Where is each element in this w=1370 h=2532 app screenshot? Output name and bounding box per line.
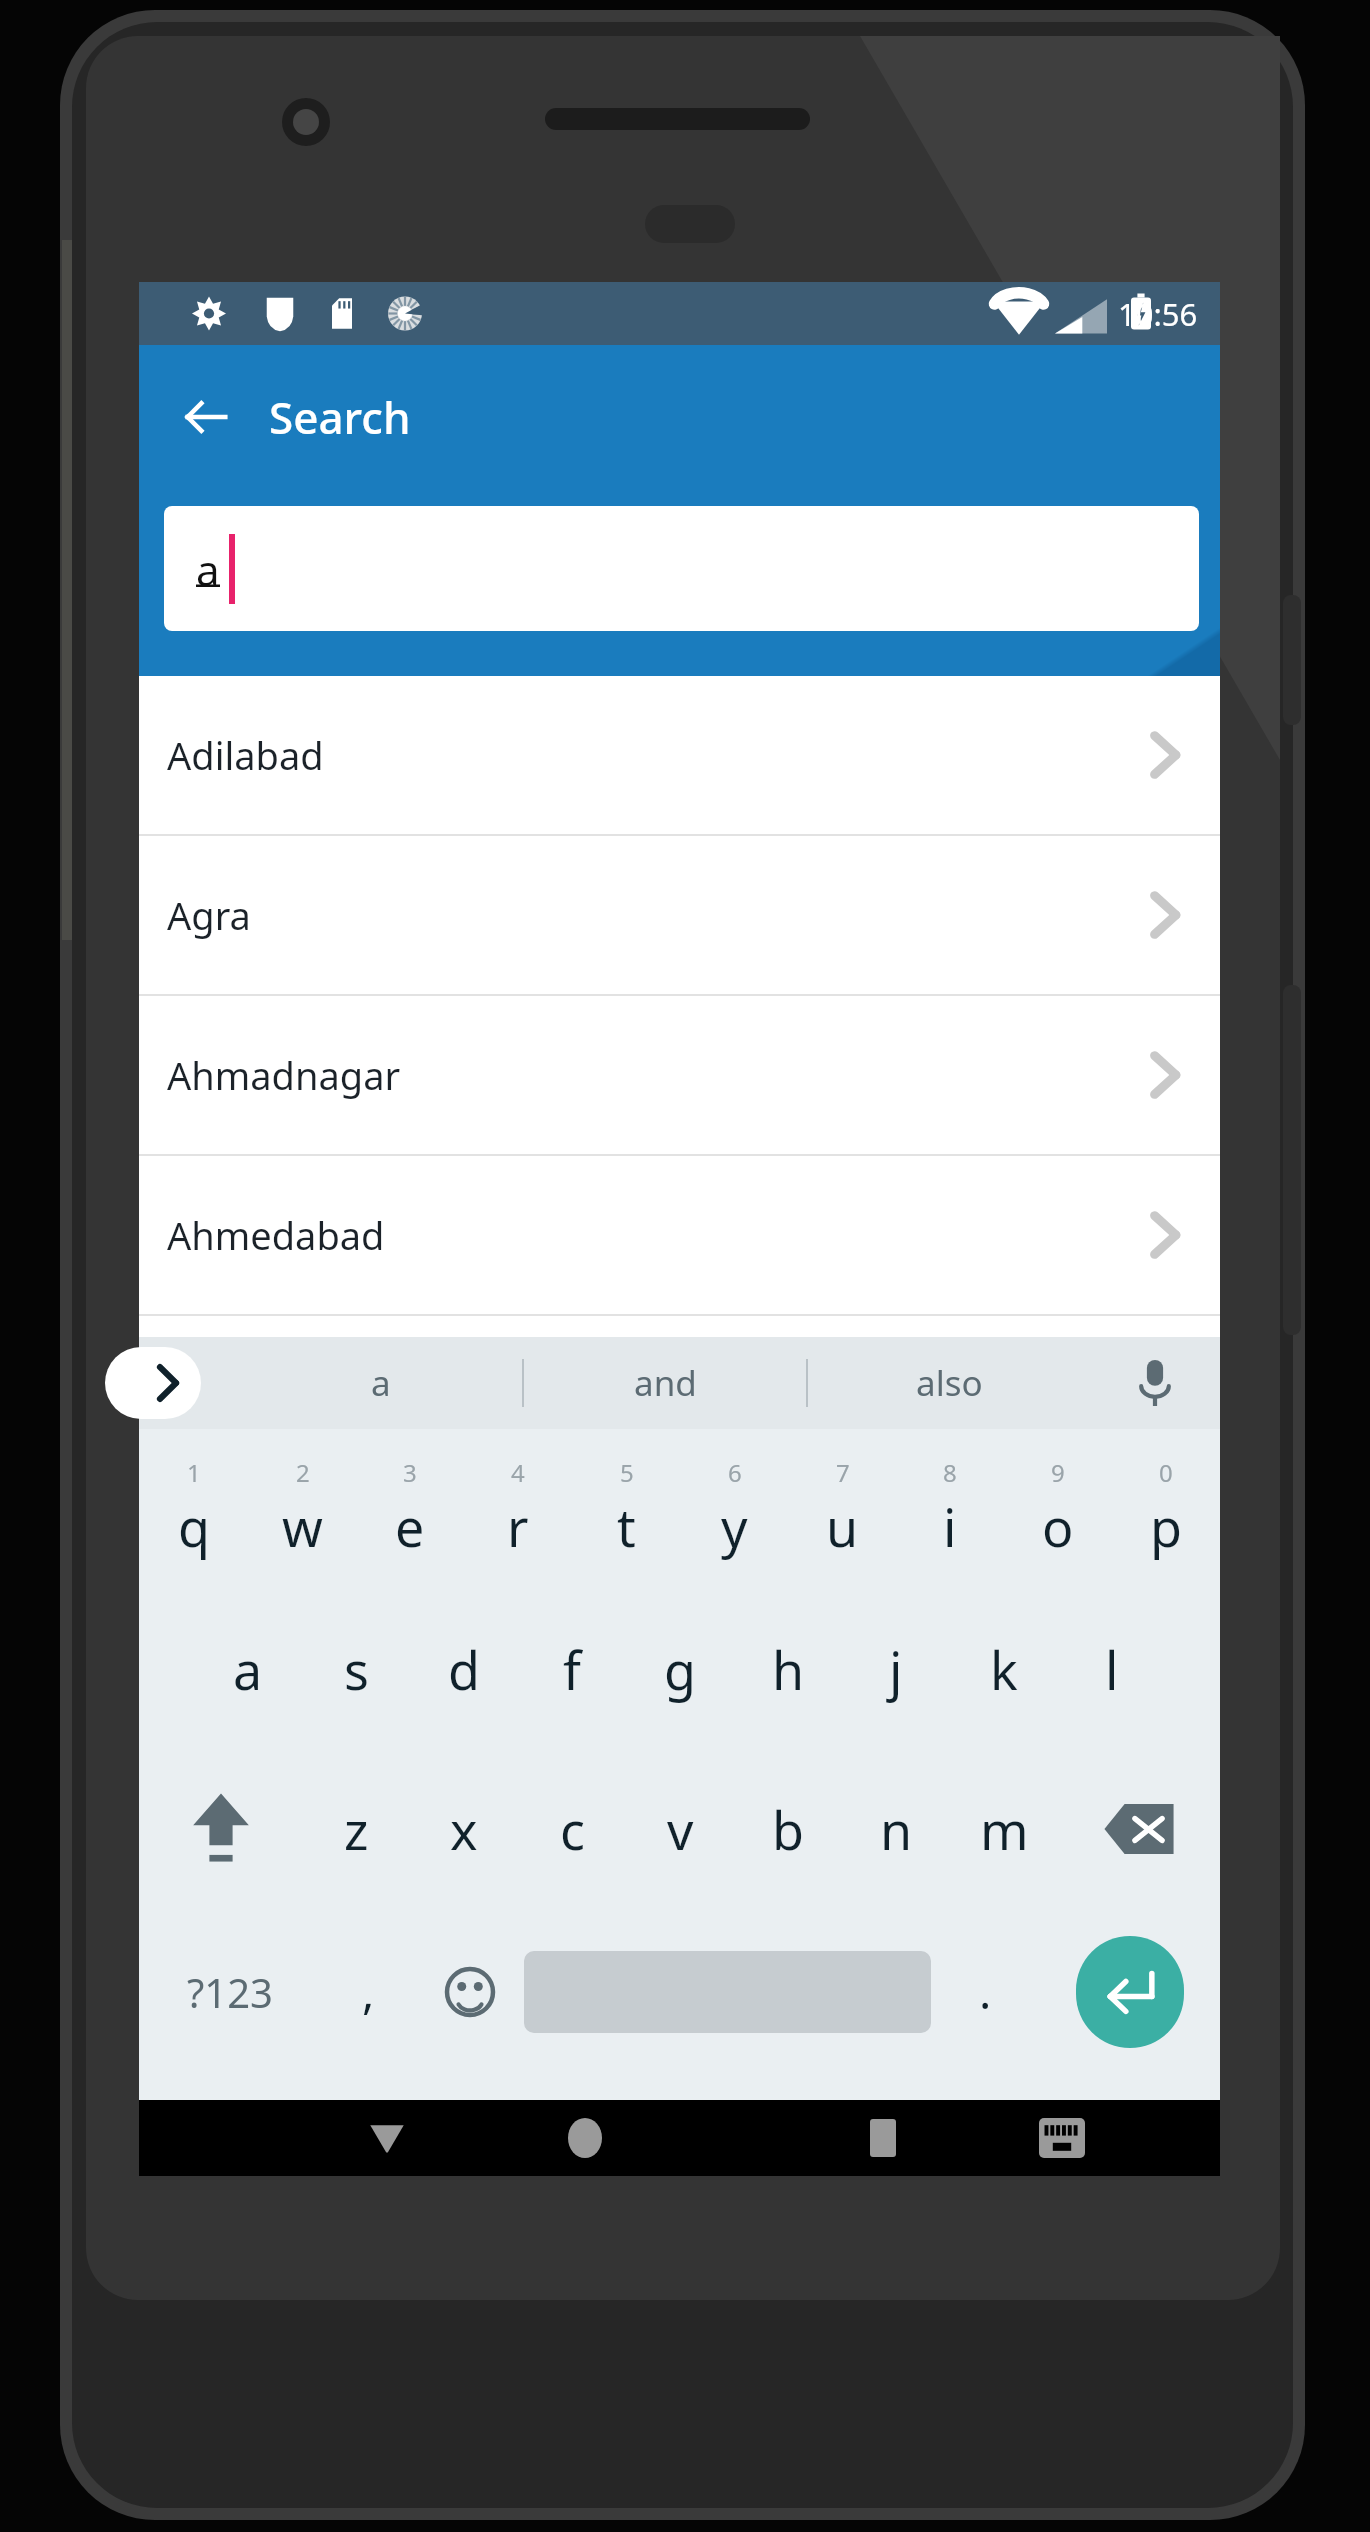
- staticText: a: [233, 1634, 263, 1705]
- staticText: t: [617, 1491, 636, 1562]
- button[interactable]: 9: [1004, 1429, 1112, 1589]
- button[interactable]: Ahmedabad: [139, 1156, 1220, 1314]
- button[interactable]: Enter: [1076, 1936, 1184, 2048]
- staticText: ?123: [187, 1965, 273, 2019]
- staticText: a: [196, 541, 220, 598]
- button[interactable]: Switch keyboard: [972, 2100, 1151, 2176]
- button[interactable]: ?123: [139, 1909, 320, 2074]
- button[interactable]: 1: [139, 1429, 248, 1589]
- button[interactable]: Hide keyboard: [288, 2100, 486, 2176]
- button[interactable]: 8: [896, 1429, 1004, 1589]
- staticText: 5: [620, 1456, 634, 1489]
- staticText: 7: [836, 1456, 850, 1489]
- staticText: v: [667, 1794, 694, 1865]
- button[interactable]: .: [931, 1909, 1039, 2074]
- staticText: k: [990, 1634, 1018, 1705]
- button[interactable]: b: [734, 1749, 842, 1909]
- staticText: q: [178, 1491, 210, 1562]
- staticText: f: [563, 1634, 581, 1705]
- staticText: g: [664, 1634, 696, 1705]
- button[interactable]: Adilabad: [139, 676, 1220, 834]
- button[interactable]: Backspace: [1058, 1749, 1220, 1909]
- staticText: 2: [296, 1456, 310, 1489]
- button[interactable]: Back: [167, 378, 245, 456]
- button[interactable]: More suggestions: [105, 1347, 201, 1419]
- staticText: Search: [269, 387, 411, 447]
- button[interactable]: l: [1058, 1589, 1166, 1749]
- button[interactable]: ,: [320, 1909, 416, 2074]
- button[interactable]: f: [518, 1589, 626, 1749]
- staticText: c: [560, 1794, 585, 1865]
- staticText: 6: [728, 1456, 742, 1489]
- button[interactable]: a: [194, 1589, 302, 1749]
- button[interactable]: a: [239, 1337, 522, 1429]
- staticText: .: [979, 1960, 992, 2023]
- staticText: b: [772, 1794, 804, 1865]
- staticText: i: [943, 1491, 957, 1562]
- button[interactable]: 2: [248, 1429, 356, 1589]
- button[interactable]: z: [302, 1749, 410, 1909]
- button[interactable]: Agra: [139, 836, 1220, 994]
- button[interactable]: v: [626, 1749, 734, 1909]
- staticText: r: [507, 1491, 529, 1562]
- button[interactable]: 5: [572, 1429, 680, 1589]
- button[interactable]: n: [842, 1749, 950, 1909]
- button[interactable]: k: [950, 1589, 1058, 1749]
- staticText: 10:56: [1118, 293, 1198, 335]
- staticText: d: [448, 1634, 480, 1705]
- staticText: 8: [943, 1456, 957, 1489]
- staticText: y: [721, 1491, 748, 1562]
- button[interactable]: and: [524, 1337, 806, 1429]
- staticText: h: [772, 1634, 805, 1705]
- staticText: s: [344, 1634, 369, 1705]
- staticText: j: [889, 1634, 903, 1705]
- staticText: e: [395, 1491, 425, 1562]
- staticText: ,: [362, 1960, 375, 2023]
- button[interactable]: c: [518, 1749, 626, 1909]
- button[interactable]: j: [842, 1589, 950, 1749]
- button[interactable]: Voice input: [1090, 1337, 1220, 1429]
- button[interactable]: x: [410, 1749, 518, 1909]
- button[interactable]: d: [410, 1589, 518, 1749]
- staticText: Ahmedabad: [167, 1209, 385, 1261]
- button[interactable]: h: [734, 1589, 842, 1749]
- button[interactable]: Shift: [139, 1749, 302, 1909]
- staticText: 0: [1159, 1456, 1173, 1489]
- staticText: 9: [1051, 1456, 1065, 1489]
- button[interactable]: a: [164, 506, 1199, 631]
- button[interactable]: 4: [464, 1429, 572, 1589]
- staticText: m: [980, 1794, 1029, 1865]
- button[interactable]: 0: [1112, 1429, 1220, 1589]
- staticText: 1: [187, 1456, 201, 1489]
- button[interactable]: Ahmadnagar: [139, 996, 1220, 1154]
- button[interactable]: also: [808, 1337, 1090, 1429]
- staticText: Agra: [167, 889, 251, 941]
- staticText: p: [1150, 1491, 1182, 1562]
- button[interactable]: g: [626, 1589, 734, 1749]
- button[interactable]: Emoji: [416, 1909, 524, 2074]
- staticText: l: [1105, 1634, 1119, 1705]
- button[interactable]: Home: [486, 2100, 684, 2176]
- button[interactable]: 7: [788, 1429, 896, 1589]
- staticText: o: [1042, 1491, 1074, 1562]
- staticText: 4: [511, 1456, 525, 1489]
- staticText: Adilabad: [167, 729, 324, 781]
- button[interactable]: 3: [356, 1429, 464, 1589]
- staticText: w: [282, 1491, 323, 1562]
- button[interactable]: s: [302, 1589, 410, 1749]
- staticText: also: [916, 1359, 983, 1407]
- staticText: Ahmadnagar: [167, 1049, 401, 1101]
- staticText: a: [371, 1359, 391, 1407]
- staticText: and: [634, 1359, 697, 1407]
- staticText: 3: [403, 1456, 417, 1489]
- staticText: z: [344, 1794, 369, 1865]
- button[interactable]: 6: [680, 1429, 788, 1589]
- staticText: n: [880, 1794, 913, 1865]
- staticText: u: [826, 1491, 859, 1562]
- staticText: x: [450, 1794, 478, 1865]
- button[interactable]: m: [950, 1749, 1058, 1909]
- button[interactable]: Recents: [793, 2100, 972, 2176]
